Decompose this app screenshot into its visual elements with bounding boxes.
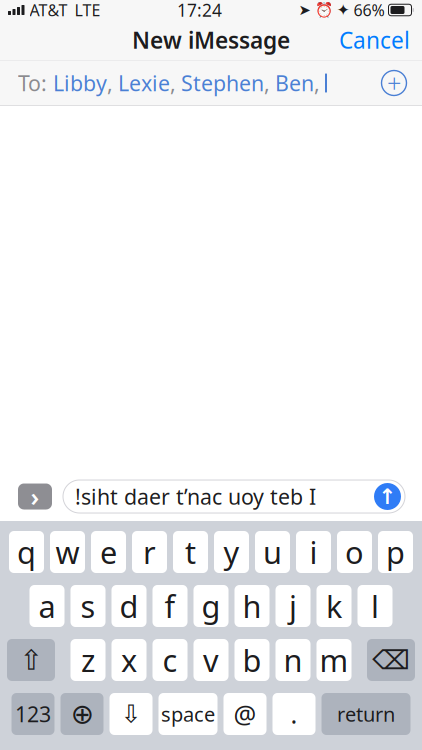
button[interactable]: e [91,531,126,573]
staticText: c [162,640,177,680]
staticText: ⇩ [120,700,141,728]
staticText: t [185,532,196,572]
staticText: i [309,532,317,572]
staticText: + [387,66,401,100]
staticText: l [371,586,379,626]
button[interactable]: j [275,585,310,627]
button[interactable]: Send [372,481,403,512]
staticText: ⊕ [70,698,93,730]
staticText: z [81,640,95,680]
staticText: e [100,532,117,572]
staticText: ➤ [298,2,310,18]
button[interactable]: o [337,531,372,573]
button[interactable]: z [70,639,105,681]
staticText: LTE [74,0,100,21]
staticText: New iMessage [132,25,290,55]
staticText: q [17,532,36,572]
button[interactable]: r [132,531,167,573]
staticText: return [337,701,395,727]
button[interactable]: Dictate [109,693,152,735]
staticText: ⇧ [19,644,42,676]
button[interactable]: Next keyboard [60,693,103,735]
staticText: p [386,532,405,572]
staticText: y [223,532,239,572]
staticText: ↑ [378,484,396,509]
staticText: 17:24 [177,0,222,21]
button[interactable]: Delete [367,639,415,681]
button[interactable]: Period [272,693,315,735]
button[interactable]: y [214,531,249,573]
staticText: b [242,640,261,680]
button[interactable]: k [316,585,351,627]
staticText: Libby [53,69,107,97]
button[interactable]: Lexie [118,69,181,97]
button[interactable]: t [173,531,208,573]
staticText: , [264,69,270,97]
button[interactable]: f [152,585,187,627]
staticText: › [30,480,39,513]
staticText: To: [18,69,47,97]
button[interactable]: p [378,531,413,573]
staticText: AT&T [29,0,67,21]
button[interactable]: s [70,585,105,627]
staticText: m [319,640,348,680]
button[interactable]: Add contact [374,63,414,103]
button[interactable]: m [316,639,351,681]
button[interactable]: d [111,585,146,627]
staticText: ⏰ [314,2,332,18]
staticText: o [345,532,364,572]
staticText: u [263,532,282,572]
staticText: 66% [353,0,384,21]
staticText: ✦ [336,1,349,19]
staticText: . [290,697,297,731]
staticText: a [38,586,55,626]
button[interactable]: i [296,531,331,573]
button[interactable]: x [111,639,146,681]
button[interactable]: h [234,585,269,627]
button[interactable]: Libby [53,69,118,97]
staticText: r [143,532,156,572]
button[interactable]: v [193,639,228,681]
staticText: , [314,69,320,97]
button[interactable]: space [158,693,217,735]
button[interactable]: n [275,639,310,681]
staticText: ⌫ [372,645,410,675]
button[interactable]: @ [223,693,266,735]
staticText: Ben [275,69,314,97]
staticText: n [283,640,302,680]
staticText: Stephen [181,69,264,97]
staticText: h [242,586,261,626]
staticText: Cancel [339,25,410,55]
staticText: space [161,701,215,727]
button[interactable]: 123 [11,693,54,735]
button[interactable]: c [152,639,187,681]
button[interactable]: w [50,531,85,573]
staticText: d [119,586,138,626]
staticText: w [55,532,79,572]
staticText: k [326,586,342,626]
staticText: x [121,640,137,680]
button[interactable]: App drawer [18,481,52,511]
button[interactable]: Shift [7,639,55,681]
staticText: , [107,69,113,97]
button[interactable]: l [357,585,392,627]
staticText: 123 [15,700,51,728]
button[interactable]: g [193,585,228,627]
button[interactable]: Stephen [181,69,275,97]
button[interactable]: u [255,531,290,573]
button[interactable]: b [234,639,269,681]
staticText: @ [233,697,256,731]
button[interactable]: Ben [275,69,325,97]
staticText: g [201,586,220,626]
staticText: !siht daer t’nac uoy teb I [75,482,316,511]
button[interactable]: a [29,585,64,627]
staticText: v [203,640,219,680]
button[interactable]: q [9,531,44,573]
button[interactable]: Cancel [327,20,422,60]
staticText: Lexie [118,69,170,97]
staticText: s [80,586,95,626]
staticText: f [164,586,175,626]
button[interactable]: return [321,693,410,735]
staticText: j [289,586,297,626]
staticText: , [170,69,176,97]
